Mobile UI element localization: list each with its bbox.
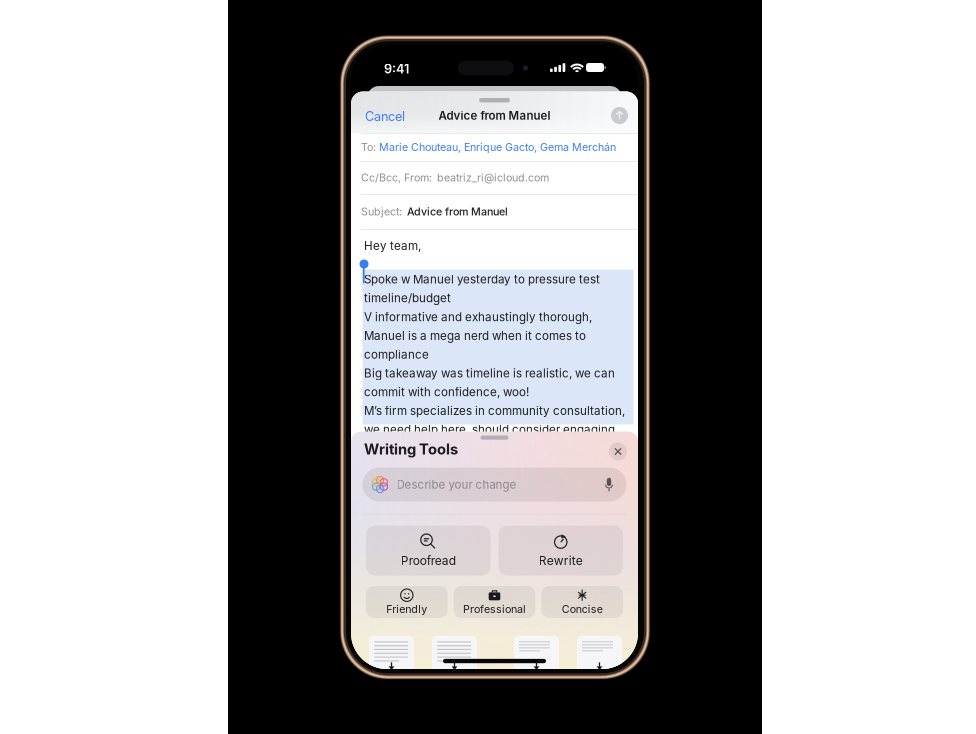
staticText: Concise [562,603,603,615]
staticText: Writing Tools [364,440,458,458]
staticText: them for some confluence agency advice [364,442,594,455]
staticText: Proofread [401,553,456,568]
staticText: Rewrite [539,553,583,568]
staticText: To: [361,141,376,153]
staticText: beatriz_ri@icloud.com [437,171,549,184]
button[interactable]: Close [604,437,632,465]
button[interactable]: Subject: [351,194,638,229]
staticText: Cc/Bcc, From: [361,171,432,184]
button[interactable]: Friendly [366,586,448,618]
staticText: commit with confidence, woo! [364,385,529,399]
staticText: Professional [463,603,526,615]
staticText: timeline/budget [364,291,451,305]
staticText: Subject: [361,205,402,218]
staticText: Advice from Manuel [438,109,550,122]
staticText: Manuel is a mega nerd when it comes to [364,329,586,343]
staticText: Cancel [365,109,405,124]
staticText: Friendly [386,603,427,615]
button[interactable]: Cc/Bcc, From: [351,161,638,194]
button[interactable]: Send [606,102,633,129]
staticText: V informative and exhaustingly thorough, [364,310,592,324]
button[interactable]: Cancel [357,103,413,130]
staticText: Spoke w Manuel yesterday to pressure tes… [364,272,600,286]
staticText: compliance [364,348,429,361]
button[interactable]: Professional [454,586,535,618]
button[interactable]: Proofread [366,526,490,576]
staticText: 9:41 [384,61,409,76]
staticText: Marie Chouteau, Enrique Gacto, Gema Merc… [379,141,616,153]
staticText: Describe your change [396,478,516,491]
staticText: Advice from Manuel [407,205,508,218]
button[interactable]: Concise [541,586,623,618]
button[interactable]: Describe your change [362,467,626,501]
staticText: Big takeaway was timeline is realistic, … [364,366,615,380]
staticText: M’s firm specializes in community consul… [364,404,625,418]
button[interactable]: Rewrite [498,526,623,576]
button[interactable]: To: [351,133,638,161]
staticText: Hey team, [364,239,421,253]
staticText: we need help here, should consider engag… [364,423,615,436]
